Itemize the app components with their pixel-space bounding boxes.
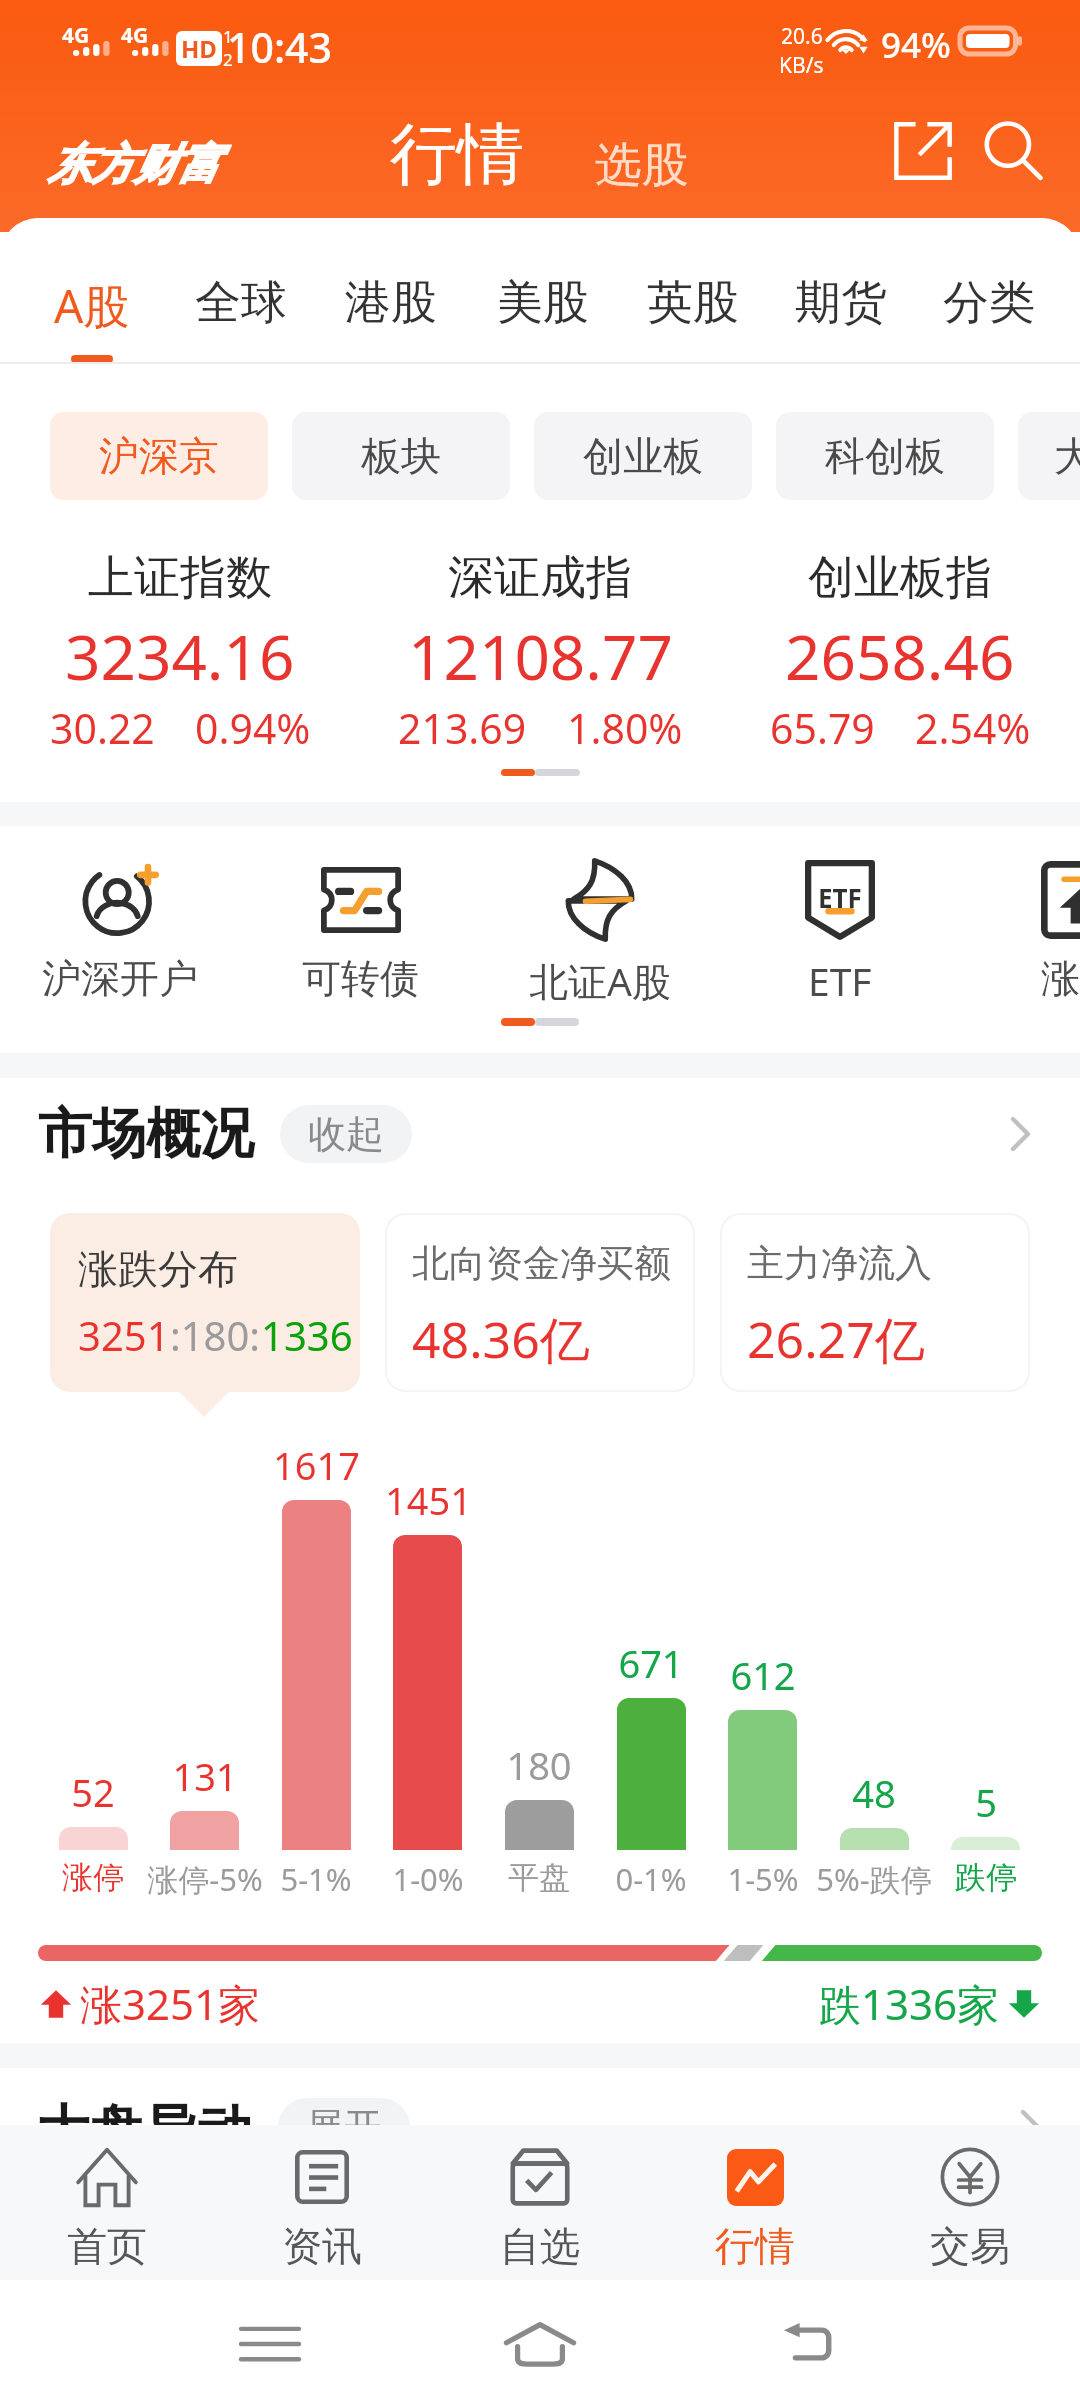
staticText: 5-1%: [280, 1858, 352, 1900]
button[interactable]: 行情: [390, 112, 524, 196]
staticText: 分类: [943, 274, 1035, 332]
button[interactable]: 主力净流入: [722, 1215, 1028, 1390]
button[interactable]: 科创板: [776, 412, 994, 500]
staticText: 可转债: [302, 954, 419, 1003]
staticText: 选股: [595, 136, 689, 195]
button[interactable]: 选股: [595, 136, 689, 195]
staticText: HD: [181, 32, 217, 65]
staticText: 沪深京: [99, 431, 219, 481]
staticText: 0-1%: [615, 1858, 687, 1900]
staticText: 港股: [345, 274, 437, 332]
button[interactable]: 创业板: [534, 412, 752, 500]
staticText: 首页: [67, 2221, 147, 2271]
staticText: 行情: [715, 2221, 795, 2271]
staticText: 全球: [195, 274, 287, 332]
staticText: 大: [1054, 431, 1080, 481]
staticText: 5%-跌停: [816, 1858, 932, 1900]
staticText: 5: [975, 1776, 997, 1828]
button[interactable]: ETF: [720, 826, 960, 1006]
staticText: 180: [506, 1739, 572, 1791]
staticText: 4G: [62, 21, 90, 50]
staticText: 2.54%: [915, 700, 1031, 756]
button[interactable]: 创业板指: [720, 540, 1080, 756]
staticText: 板块: [361, 431, 441, 481]
staticText: :180:: [170, 1308, 261, 1362]
staticText: 2658.46: [785, 614, 1015, 698]
button[interactable]: 可转债: [240, 826, 480, 1006]
staticText: 48.36亿: [412, 1305, 590, 1373]
button[interactable]: 上证指数: [0, 540, 360, 756]
staticText: 65.79: [770, 700, 875, 756]
staticText: 3251: [78, 1308, 170, 1362]
button[interactable]: 收起: [280, 1105, 412, 1163]
button[interactable]: 资讯: [214, 2125, 430, 2280]
staticText: 612: [730, 1649, 796, 1701]
staticText: 沪深开户: [42, 954, 198, 1003]
staticText: 52: [71, 1766, 115, 1818]
button[interactable]: 期货: [766, 240, 916, 364]
staticText: 自选: [500, 2221, 580, 2271]
staticText: 213.69: [398, 700, 527, 756]
staticText: 1.80%: [567, 700, 683, 756]
staticText: 涨停: [1041, 954, 1080, 1003]
button[interactable]: 大: [1018, 412, 1080, 500]
button[interactable]: Share: [878, 106, 968, 196]
button[interactable]: 板块: [292, 412, 510, 500]
staticText: 资讯: [282, 2221, 362, 2271]
button[interactable]: 全球: [166, 240, 316, 364]
staticText: 期货: [795, 274, 887, 332]
staticText: 美股: [497, 274, 589, 332]
staticText: 深证成指: [448, 549, 632, 607]
button[interactable]: 涨停: [960, 826, 1080, 1006]
staticText: 26.27亿: [747, 1305, 925, 1373]
staticText: 1336: [261, 1308, 353, 1362]
staticText: 1-0%: [392, 1858, 464, 1900]
button[interactable]: 深证成指: [360, 540, 720, 756]
staticText: 创业板指: [808, 549, 992, 607]
staticText: KB/s: [779, 51, 824, 80]
button[interactable]: More: [988, 1102, 1052, 1166]
staticText: 跌1336家: [819, 1975, 1000, 2032]
staticText: 1617: [273, 1439, 360, 1491]
button[interactable]: 交易: [862, 2125, 1078, 2280]
staticText: 大盘异动: [36, 2097, 252, 2157]
staticText: 涨停-5%: [147, 1858, 263, 1900]
button[interactable]: 涨跌分布: [50, 1213, 360, 1392]
button[interactable]: Recents: [225, 2299, 315, 2389]
button[interactable]: 北向资金净买额: [387, 1215, 693, 1390]
button[interactable]: Back: [765, 2299, 855, 2389]
staticText: 12108.77: [408, 614, 673, 698]
staticText: 30.22: [50, 700, 155, 756]
staticText: ETF: [818, 880, 862, 915]
staticText: 48: [852, 1767, 896, 1819]
button[interactable]: A股: [17, 240, 167, 364]
staticText: 涨跌分布: [78, 1244, 238, 1294]
staticText: 交易: [930, 2221, 1010, 2271]
button[interactable]: 港股: [316, 240, 466, 364]
staticText: 2: [223, 48, 233, 71]
staticText: 英股: [647, 274, 739, 332]
staticText: 10:43: [227, 19, 332, 75]
staticText: 20.6: [781, 22, 823, 51]
button[interactable]: 自选: [432, 2125, 648, 2280]
button[interactable]: Home: [495, 2299, 585, 2389]
staticText: 671: [618, 1637, 684, 1689]
button[interactable]: 首页: [0, 2125, 215, 2280]
staticText: 1-5%: [727, 1858, 799, 1900]
staticText: 收起: [308, 1110, 384, 1158]
button[interactable]: 沪深京: [50, 412, 268, 500]
button[interactable]: 分类: [914, 240, 1064, 364]
button[interactable]: 行情: [647, 2125, 863, 2280]
staticText: 跌停: [955, 1858, 1017, 1897]
button[interactable]: 沪深开户: [0, 826, 240, 1006]
staticText: 涨3251家: [80, 1975, 261, 2032]
staticText: 131: [172, 1750, 238, 1802]
staticText: A股: [54, 274, 130, 337]
staticText: 主力净流入: [747, 1240, 932, 1287]
staticText: 上证指数: [88, 549, 272, 607]
staticText: 市场概况: [38, 1100, 254, 1168]
button[interactable]: 美股: [468, 240, 618, 364]
button[interactable]: 英股: [618, 240, 768, 364]
button[interactable]: 北证A股: [480, 826, 720, 1006]
button[interactable]: Search: [968, 106, 1058, 196]
